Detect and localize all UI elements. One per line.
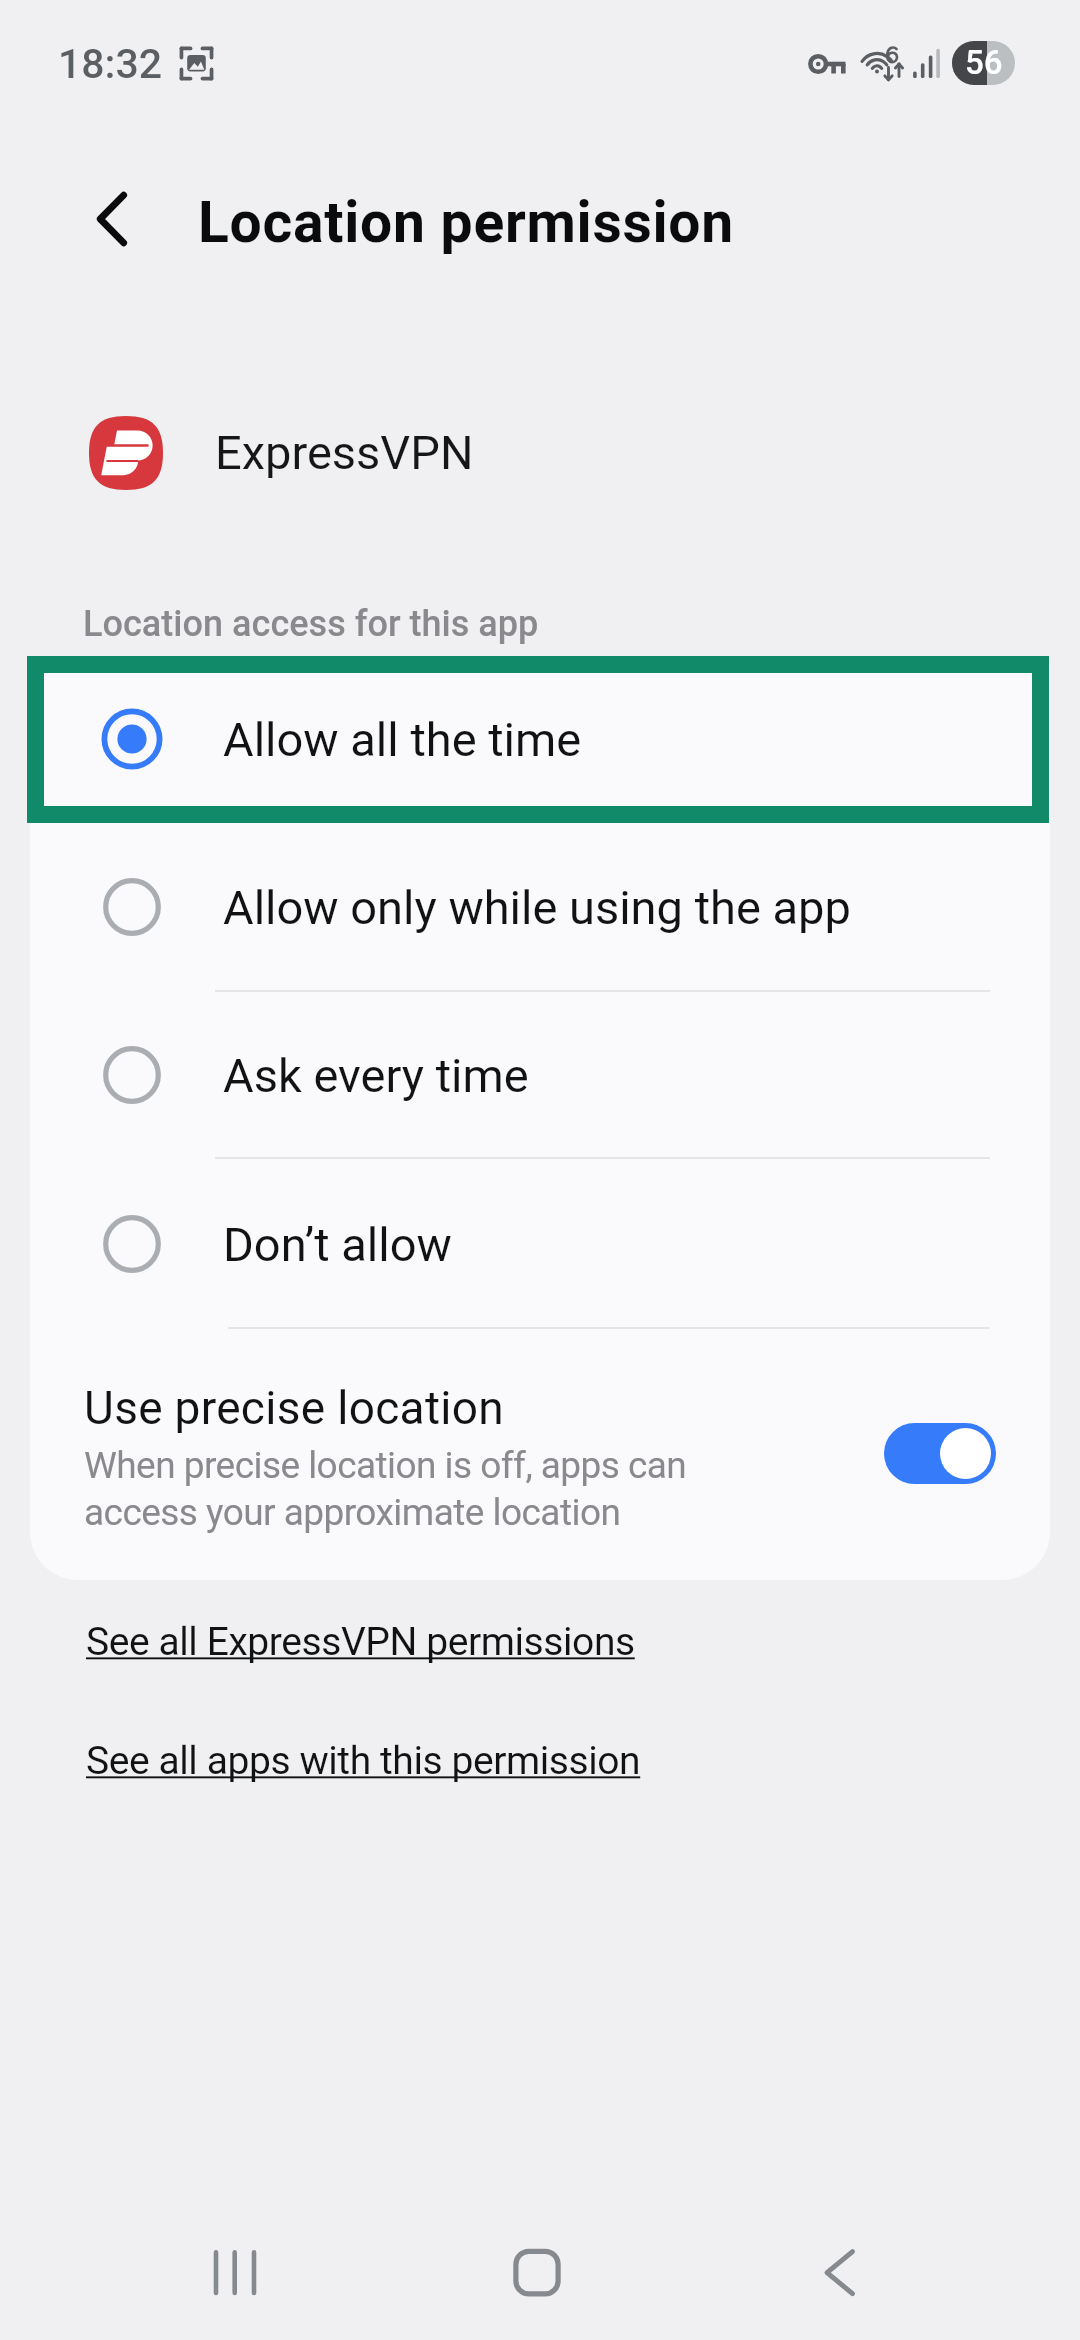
button[interactable]: Ask every time [30, 991, 1050, 1158]
staticText: Allow only while using the app [223, 880, 851, 935]
button[interactable]: See all apps with this permission [62, 1725, 654, 1817]
staticText: See all apps with this permission [86, 1738, 641, 1784]
staticText: Don’t allow [223, 1217, 452, 1272]
staticText: 18:32 [58, 40, 163, 88]
button[interactable]: Navigate up [66, 184, 158, 276]
staticText: Ask every time [223, 1048, 529, 1103]
button[interactable]: Home [482, 2218, 592, 2328]
staticText: ExpressVPN [215, 425, 474, 480]
staticText: Location permission [198, 189, 734, 256]
staticText: Location access for this app [83, 603, 539, 645]
staticText: Allow all the time [223, 712, 582, 767]
button[interactable]: Back [790, 2218, 900, 2328]
button[interactable]: Use precise location [30, 1332, 1050, 1580]
staticText: See all ExpressVPN permissions [86, 1619, 635, 1665]
button[interactable]: Use precise location [884, 1423, 996, 1484]
staticText: When precise location is off, apps can [84, 1444, 687, 1487]
staticText: Use precise location [84, 1381, 504, 1435]
button[interactable]: See all ExpressVPN permissions [62, 1606, 654, 1698]
button[interactable]: Allow all the time [30, 655, 1050, 822]
staticText: 56 [965, 43, 1003, 82]
button[interactable]: Recent apps [180, 2218, 290, 2328]
staticText: access your approximate location [84, 1491, 621, 1534]
button[interactable]: Allow only while using the app [30, 823, 1050, 990]
button[interactable]: Don’t allow [30, 1160, 1050, 1327]
